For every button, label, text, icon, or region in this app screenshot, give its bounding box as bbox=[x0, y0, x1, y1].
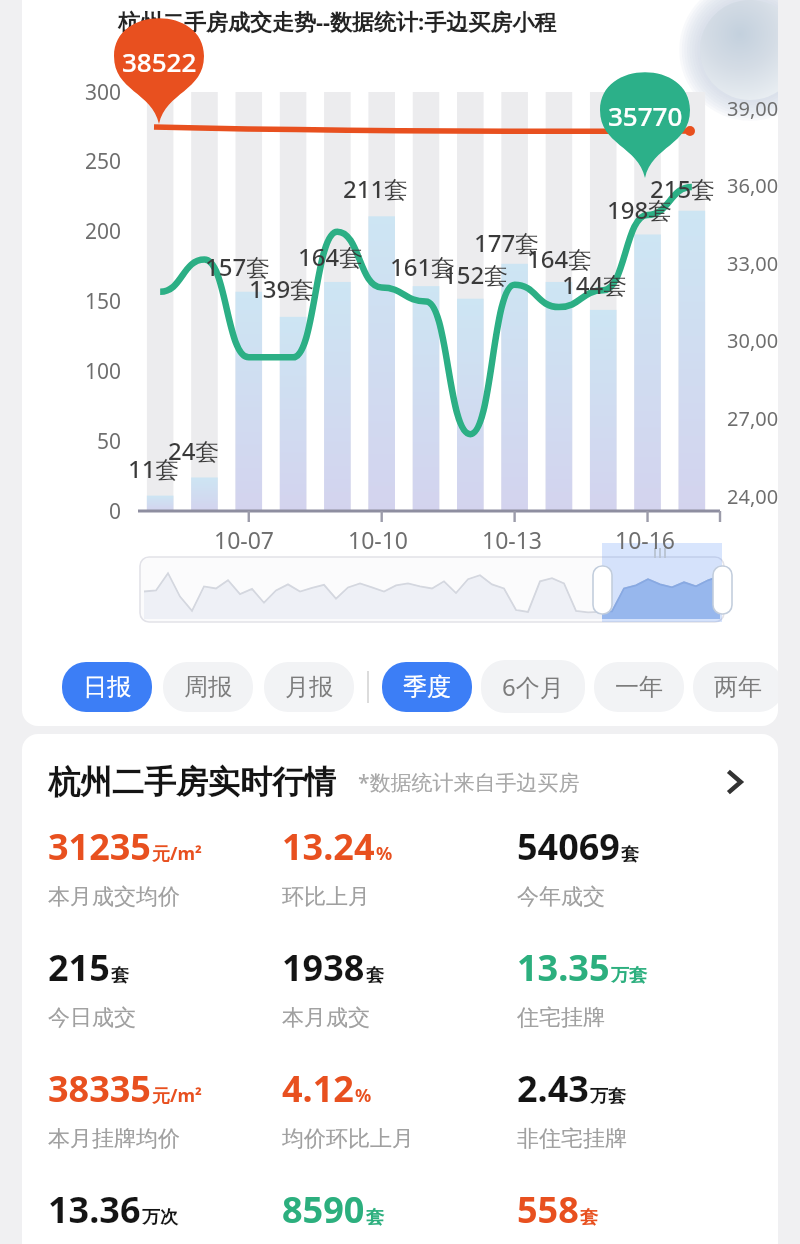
staticText: 万套 bbox=[590, 1085, 626, 1108]
staticText: 月报 bbox=[285, 672, 333, 702]
staticText: 150 bbox=[22, 287, 121, 316]
staticText: 8590 bbox=[282, 1185, 365, 1234]
staticText: 套 bbox=[366, 964, 384, 987]
staticText: 27,00 bbox=[727, 405, 778, 432]
staticText: 套 bbox=[111, 964, 129, 987]
staticText: 套 bbox=[366, 1206, 384, 1229]
staticText: 非住宅挂牌 bbox=[517, 1125, 627, 1153]
staticText: 10-07 bbox=[189, 524, 299, 555]
staticText: 11套 bbox=[128, 452, 180, 485]
staticText: 今年成交 bbox=[517, 883, 605, 911]
staticText: 万次 bbox=[142, 1206, 178, 1229]
staticText: 39,00 bbox=[727, 95, 778, 122]
staticText: 200 bbox=[22, 217, 121, 246]
staticText: 13.36 bbox=[48, 1185, 141, 1234]
staticText: 144套 bbox=[562, 268, 628, 301]
button[interactable]: 周报 bbox=[163, 662, 253, 712]
staticText: 215套 bbox=[650, 172, 716, 205]
staticText: 今日成交 bbox=[48, 1004, 136, 1032]
staticText: 100 bbox=[22, 357, 121, 386]
staticText: 558 bbox=[517, 1185, 579, 1234]
staticText: 24套 bbox=[168, 434, 220, 467]
staticText: 10-16 bbox=[590, 524, 700, 555]
staticText: 198套 bbox=[607, 193, 673, 226]
staticText: *数据统计来自手边买房 bbox=[358, 768, 580, 797]
button[interactable]: 月报 bbox=[264, 662, 354, 712]
button[interactable]: 两年 bbox=[693, 662, 778, 712]
staticText: 一年 bbox=[615, 672, 663, 702]
button[interactable]: 季度 bbox=[382, 662, 472, 712]
staticText: 万套 bbox=[611, 964, 647, 987]
other: 查看更多 bbox=[716, 764, 752, 800]
staticText: % bbox=[376, 841, 393, 866]
staticText: 4.12 bbox=[282, 1064, 354, 1113]
staticText: 33,00 bbox=[727, 250, 778, 277]
staticText: 套 bbox=[621, 843, 639, 866]
staticText: 177套 bbox=[474, 226, 540, 259]
staticText: 152套 bbox=[443, 258, 509, 291]
staticText: 本月成交 bbox=[282, 1004, 370, 1032]
staticText: 6个月 bbox=[502, 670, 564, 703]
staticText: 38335 bbox=[48, 1064, 151, 1113]
staticText: 139套 bbox=[249, 272, 315, 305]
staticText: 24,00 bbox=[727, 483, 778, 510]
button[interactable]: 日报 bbox=[62, 662, 152, 712]
button[interactable]: 一年 bbox=[594, 662, 684, 712]
button[interactable]: 6个月 bbox=[481, 660, 585, 713]
staticText: 13.35 bbox=[517, 943, 610, 992]
staticText: 10-13 bbox=[457, 524, 567, 555]
staticText: % bbox=[355, 1083, 372, 1108]
staticText: 31235 bbox=[48, 822, 151, 871]
staticText: 157套 bbox=[205, 250, 271, 283]
staticText: 日报 bbox=[83, 672, 131, 702]
staticText: 30,00 bbox=[727, 327, 778, 354]
staticText: 164套 bbox=[298, 240, 364, 273]
staticText: 住宅挂牌 bbox=[517, 1004, 605, 1032]
staticText: 300 bbox=[22, 78, 121, 107]
staticText: 本月成交均价 bbox=[48, 883, 180, 911]
staticText: 1938 bbox=[282, 943, 365, 992]
staticText: 0 bbox=[22, 497, 121, 526]
staticText: 季度 bbox=[403, 672, 451, 702]
staticText: 周报 bbox=[184, 672, 232, 702]
staticText: 36,00 bbox=[727, 172, 778, 199]
staticText: 211套 bbox=[343, 172, 409, 205]
staticText: 38522 bbox=[122, 44, 197, 79]
staticText: 本月挂牌均价 bbox=[48, 1125, 180, 1153]
staticText: 元/m² bbox=[152, 1083, 202, 1108]
staticText: 套 bbox=[580, 1206, 598, 1229]
staticText: 两年 bbox=[714, 672, 762, 702]
staticText: 161套 bbox=[390, 250, 456, 283]
button[interactable]: 杭州二手房实时行情 bbox=[22, 762, 778, 802]
staticText: 250 bbox=[22, 147, 121, 176]
staticText: 215 bbox=[48, 943, 110, 992]
staticText: 杭州二手房实时行情 bbox=[48, 762, 336, 802]
staticText: 10-10 bbox=[323, 524, 433, 555]
staticText: 54069 bbox=[517, 822, 620, 871]
staticText: 元/m² bbox=[152, 841, 202, 866]
staticText: 164套 bbox=[527, 242, 593, 275]
staticText: 环比上月 bbox=[282, 883, 370, 911]
staticText: 35770 bbox=[608, 98, 683, 133]
staticText: 均价环比上月 bbox=[282, 1125, 414, 1153]
staticText: 2.43 bbox=[517, 1064, 589, 1113]
staticText: 杭州二手房成交走势--数据统计:手边买房小程 bbox=[118, 6, 557, 36]
staticText: 50 bbox=[22, 427, 121, 456]
staticText: 13.24 bbox=[282, 822, 375, 871]
